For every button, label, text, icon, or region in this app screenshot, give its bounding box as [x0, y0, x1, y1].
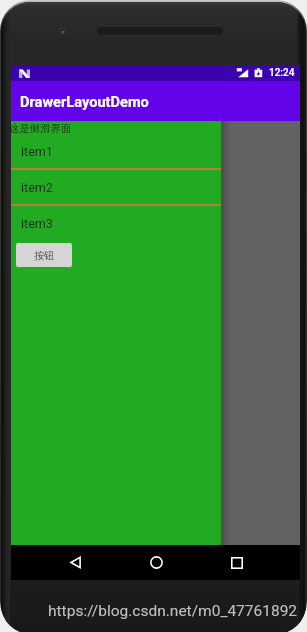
- button[interactable]: Home: [136, 545, 176, 580]
- staticText: item1: [21, 144, 53, 159]
- staticText: item3: [21, 216, 53, 231]
- staticText: 按钮: [34, 249, 54, 262]
- staticText: 这是侧滑界面: [9, 122, 72, 135]
- button[interactable]: item2: [11, 170, 221, 204]
- button[interactable]: item3: [11, 206, 221, 240]
- button[interactable]: item1: [11, 134, 221, 168]
- staticText: 12:24: [269, 67, 295, 79]
- staticText: item2: [21, 180, 53, 195]
- button[interactable]: 按钮: [16, 243, 72, 267]
- staticText: https://blog.csdn.net/m0_47761892: [48, 602, 298, 620]
- button[interactable]: Back: [55, 545, 95, 580]
- button[interactable]: DrawerLayoutDemo: [11, 81, 300, 121]
- button[interactable]: Recents: [217, 545, 257, 580]
- staticText: DrawerLayoutDemo: [20, 93, 149, 110]
